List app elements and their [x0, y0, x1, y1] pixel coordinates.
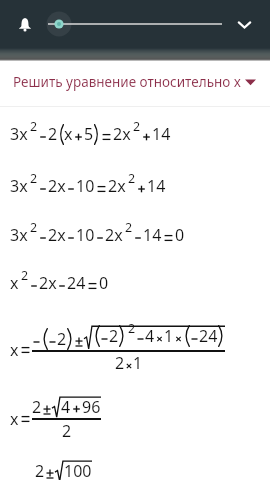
staticText: 0: [99, 272, 109, 294]
staticText: 0: [175, 224, 185, 246]
staticText: 1: [133, 352, 143, 374]
button[interactable]: Zoom slider: [40, 0, 230, 48]
staticText: 3x: [10, 175, 28, 197]
staticText: 2: [35, 460, 45, 480]
staticText: 3x: [10, 123, 28, 145]
staticText: 2: [109, 325, 119, 347]
staticText: 1: [164, 325, 174, 347]
staticText: 5: [84, 123, 94, 145]
staticText: 2: [128, 170, 136, 187]
staticText: 2: [32, 396, 42, 418]
staticText: 2x: [39, 272, 57, 294]
staticText: 10: [76, 175, 95, 197]
staticText: 2: [125, 219, 133, 236]
staticText: 4: [145, 325, 155, 347]
staticText: 2: [30, 219, 38, 236]
staticText: x: [10, 339, 19, 361]
staticText: Решить уравнение относительно x: [13, 73, 241, 91]
staticText: 96: [82, 396, 101, 417]
staticText: x: [10, 408, 19, 430]
staticText: 14: [147, 175, 166, 197]
staticText: 2: [62, 420, 72, 442]
staticText: 2x: [108, 175, 126, 197]
staticText: x: [10, 272, 19, 294]
button[interactable]: Expand: [232, 12, 256, 36]
staticText: 2x: [48, 224, 66, 246]
staticText: 2: [30, 170, 38, 187]
button[interactable]: Notifications: [11, 11, 38, 38]
staticText: 24: [199, 325, 218, 347]
staticText: x: [64, 123, 73, 145]
staticText: 2: [57, 328, 67, 350]
staticText: 2: [30, 118, 38, 135]
staticText: 14: [143, 224, 162, 246]
staticText: 4: [61, 396, 71, 417]
staticText: 2: [115, 352, 125, 374]
staticText: 2x: [48, 175, 66, 197]
button[interactable]: Решить уравнение относительно x: [0, 61, 270, 106]
staticText: 2x: [113, 123, 131, 145]
staticText: 3x: [10, 224, 28, 246]
staticText: 2: [133, 118, 141, 135]
staticText: 14: [152, 123, 171, 145]
staticText: 2x: [105, 224, 123, 246]
staticText: 100: [64, 460, 92, 480]
staticText: 2: [128, 320, 136, 337]
staticText: 10: [76, 224, 95, 246]
staticText: 24: [67, 272, 86, 294]
staticText: 2: [48, 123, 58, 145]
staticText: 2: [21, 267, 29, 284]
